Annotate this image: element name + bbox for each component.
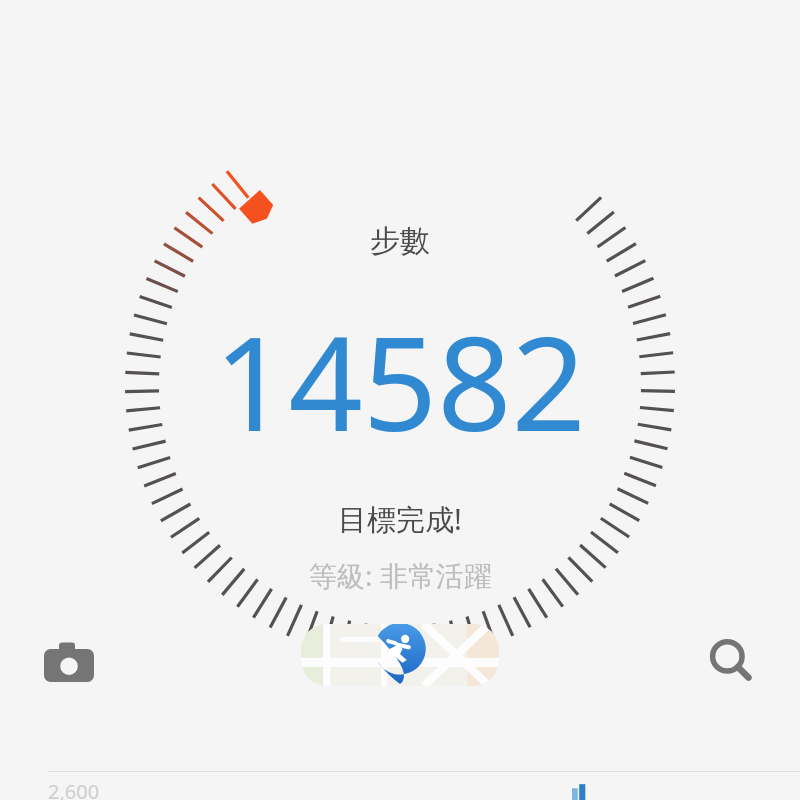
staticText: 14582 xyxy=(214,292,586,469)
button[interactable]: Running map xyxy=(300,622,500,688)
staticText: 等級: 非常活躍 xyxy=(309,556,492,594)
staticText: 步數 xyxy=(370,222,430,260)
staticText: 目標完成! xyxy=(338,499,462,539)
button[interactable]: Search xyxy=(700,630,762,692)
staticText: 2,600 xyxy=(48,778,100,800)
button[interactable]: Camera xyxy=(38,630,100,692)
